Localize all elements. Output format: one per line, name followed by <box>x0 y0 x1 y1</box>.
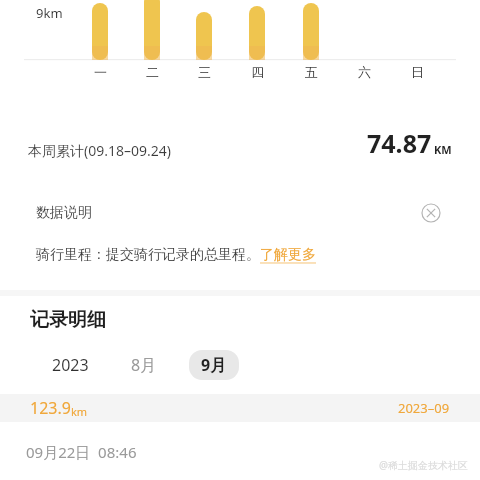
button[interactable]: 8月 <box>125 350 163 380</box>
button[interactable]: 123.9 <box>0 394 480 422</box>
staticText: 74.87 <box>367 126 432 160</box>
staticText: 三 <box>198 64 211 80</box>
staticText: 一 <box>94 64 107 80</box>
staticText: 9月 <box>201 354 227 376</box>
staticText: 记录明细 <box>30 308 106 332</box>
staticText: 骑行里程：提交骑行记录的总里程。 <box>36 246 260 264</box>
button[interactable]: 9月 <box>189 350 239 380</box>
staticText: 本周累计(09.18–09.24) <box>28 141 171 160</box>
staticText: 8月 <box>131 354 157 376</box>
staticText: @稀土掘金技术社区 <box>379 458 468 472</box>
staticText: km <box>71 404 88 419</box>
staticText: 数据说明 <box>36 204 92 222</box>
staticText: 了解更多 <box>260 246 316 264</box>
staticText: 日 <box>411 64 424 80</box>
staticText: KM <box>434 142 452 157</box>
staticText: 二 <box>146 64 159 80</box>
staticText: 09月22日 08:46 <box>26 442 137 462</box>
button[interactable]: 了解更多 <box>260 246 316 264</box>
button[interactable]: 2023 <box>46 350 95 380</box>
staticText: 123.9 <box>30 397 71 419</box>
staticText: 六 <box>358 64 371 80</box>
staticText: 五 <box>305 64 318 80</box>
staticText: 四 <box>251 64 264 80</box>
staticText: 9km <box>36 4 63 22</box>
staticText: 2023 <box>52 354 89 376</box>
staticText: 2023–09 <box>398 399 450 417</box>
button[interactable]: Close <box>418 200 444 226</box>
